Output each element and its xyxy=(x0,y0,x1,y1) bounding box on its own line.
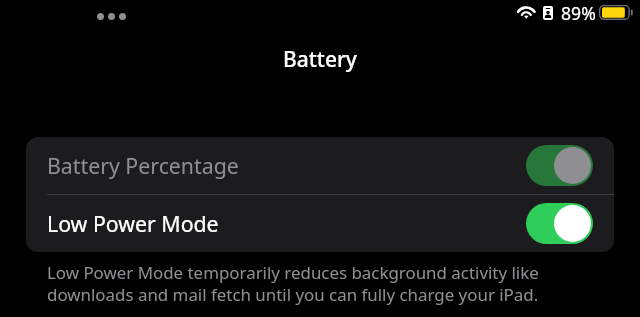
other: Battery 89 percent, Low Power Mode xyxy=(599,5,634,20)
button[interactable]: Multitasking controls xyxy=(97,13,126,20)
staticText: Low Power Mode xyxy=(47,209,219,238)
staticText: Battery Percentage xyxy=(47,151,239,180)
staticText: Low Power Mode temporarily reduces backg… xyxy=(47,261,547,306)
staticText: 89% xyxy=(561,1,596,25)
other: Screen Time xyxy=(543,6,553,20)
button[interactable]: Battery Percentage, on xyxy=(526,145,593,186)
other: Wi-Fi connected xyxy=(517,6,536,19)
button[interactable]: Low Power Mode xyxy=(26,195,614,252)
button[interactable]: Battery Percentage xyxy=(26,137,614,194)
staticText: Battery xyxy=(0,45,640,74)
button[interactable]: Low Power Mode, on xyxy=(526,203,593,244)
